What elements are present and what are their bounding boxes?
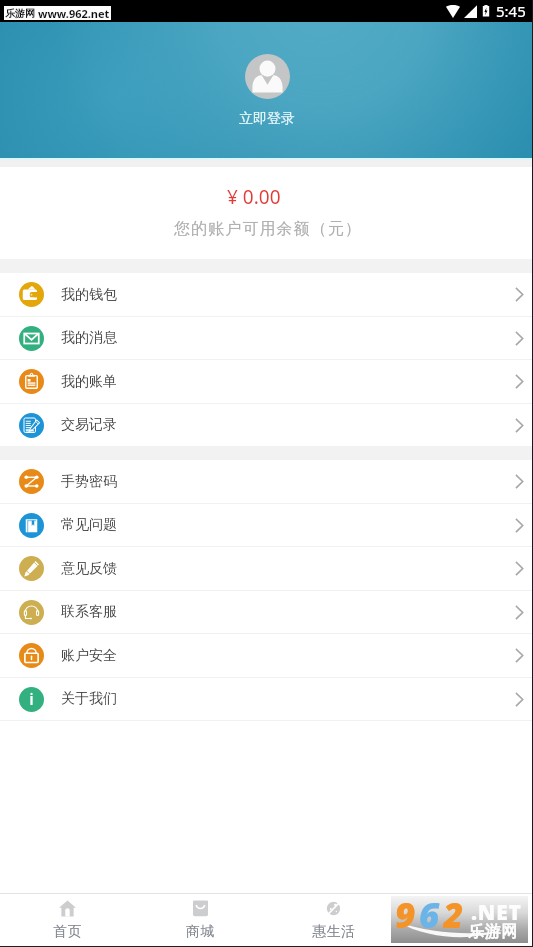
staticText: 意见反馈 [61,560,117,578]
button[interactable]: Log in [245,54,290,99]
staticText: 6 [419,891,440,938]
staticText: 关于我们 [61,690,117,708]
staticText: .NET [471,898,522,927]
staticText: 常见问题 [61,516,117,534]
staticText: 2 [443,891,464,938]
button[interactable]: 立即登录 [239,110,295,128]
staticText: 我的钱包 [61,286,117,304]
staticText: ¥ 0.00 [227,184,281,210]
staticText: 乐游网 [5,7,35,20]
staticText: 惠生活 [312,923,356,941]
staticText: 9 [395,891,416,938]
button[interactable]: 手势密码 [0,460,533,503]
staticText: www.962.net [38,6,110,20]
button[interactable]: 账户安全 [0,634,533,677]
staticText: 我的 [452,923,481,941]
button[interactable]: 我的账单 [0,360,533,403]
button[interactable]: 我的钱包 [0,273,533,316]
staticText: 您的账户可用余额（元） [174,219,363,239]
button[interactable]: 交易记录 [0,404,533,446]
staticText: 首页 [53,923,82,941]
staticText: 5:45 [496,1,526,21]
button[interactable]: 常见问题 [0,504,533,546]
button[interactable]: 我的 [400,894,533,947]
button[interactable]: 首页 [0,894,134,947]
staticText: 账户安全 [61,647,117,665]
staticText: 我的消息 [61,329,117,347]
button[interactable]: 关于我们 [0,678,533,720]
staticText: 交易记录 [61,416,117,434]
button[interactable]: 意见反馈 [0,547,533,590]
staticText: 商城 [186,923,215,941]
staticText: 联系客服 [61,603,117,621]
staticText: 乐游网 [468,922,518,942]
staticText: 我的账单 [61,373,117,391]
button[interactable]: 联系客服 [0,591,533,633]
button[interactable]: 我的消息 [0,317,533,359]
button[interactable]: 惠生活 [267,894,400,947]
button[interactable]: 商城 [134,894,267,947]
staticText: 手势密码 [61,473,117,491]
